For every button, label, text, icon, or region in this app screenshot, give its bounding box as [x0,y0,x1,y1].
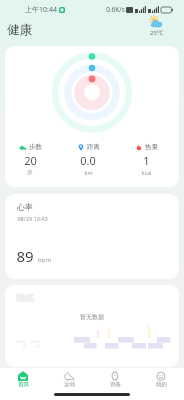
staticText: 20 [24,153,37,168]
staticText: 1 [143,153,150,168]
staticText: 步 [27,169,33,176]
staticText: 设备 [110,381,121,388]
staticText: kcal [141,169,152,176]
button[interactable]: 设备 [92,368,138,391]
button[interactable]: Weather, 25 degrees [147,16,166,37]
button[interactable]: 我的 [138,368,184,391]
staticText: 上午10:44 [25,5,57,15]
button[interactable]: 睡眠 [5,285,179,367]
staticText: 距离 [87,143,100,151]
button[interactable]: 热量 [117,143,175,176]
staticText: 08/29 10:43 [17,215,48,222]
staticText: 首页 [18,381,29,388]
staticText: 25℃ [150,29,163,37]
button[interactable]: 运动 [46,368,92,391]
staticText: 健康 [7,22,32,38]
staticText: 89 [16,246,34,266]
staticText: 运动 [64,381,75,388]
button[interactable]: 首页 [0,368,46,391]
staticText: km [84,169,93,176]
button[interactable]: 心率 [5,194,179,279]
staticText: 步数 [29,143,42,151]
staticText: 暂无数据 [80,313,104,321]
staticText: bpm [38,256,51,264]
staticText: 0.0 [80,153,96,168]
staticText: 睡眠 [16,292,34,303]
staticText: 心率 [17,202,33,212]
button[interactable]: 步数 [5,143,59,176]
staticText: 我的 [156,381,167,388]
button[interactable]: 步数 [5,46,179,187]
staticText: 0.6K/s [106,5,125,14]
button[interactable]: 距离 [59,143,117,176]
staticText: 热量 [145,143,158,151]
